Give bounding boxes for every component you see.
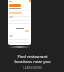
- button[interactable]: [9, 4, 21, 7]
- button[interactable]: LEARN MORE: [23, 66, 42, 70]
- staticText: Find restaurant locations near you: [14, 54, 51, 64]
- staticText: LEARN MORE: [23, 66, 42, 70]
